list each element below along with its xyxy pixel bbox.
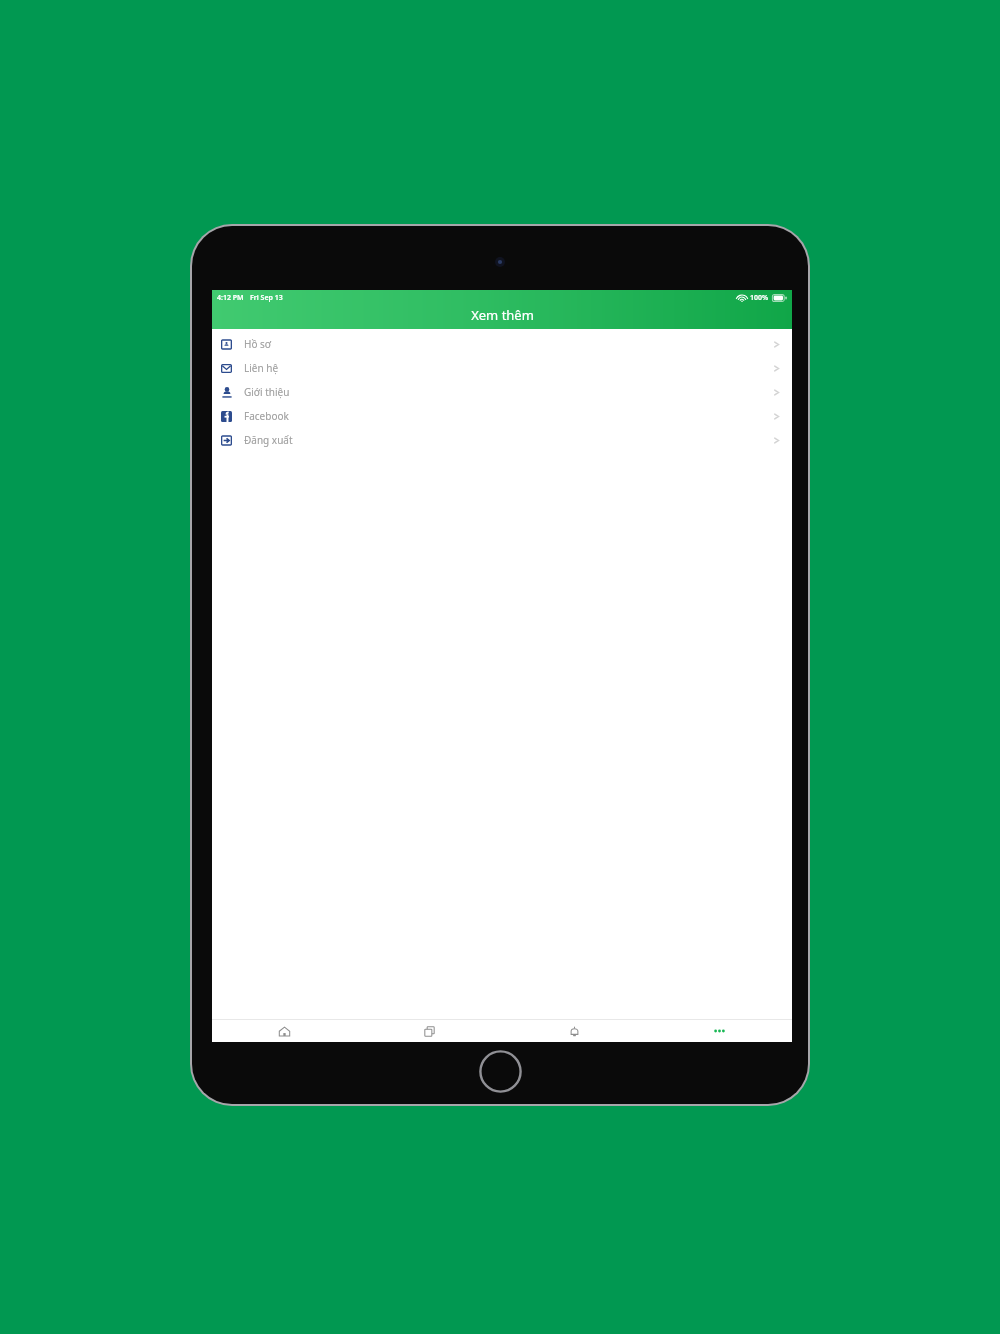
button[interactable]: Notifications [502,1020,647,1042]
button[interactable]: Hồ sơ [212,332,792,356]
staticText: 100% [750,293,769,303]
button[interactable]: Giới thiệu [212,380,792,404]
staticText: Facebook [244,409,289,423]
staticText: Xem thêm [471,306,534,324]
button[interactable]: Liên hệ [212,356,792,380]
staticText: Giới thiệu [244,385,290,399]
button[interactable]: Đăng xuất [212,428,792,452]
staticText: Liên hệ [244,361,279,375]
button[interactable]: Pages [357,1020,502,1042]
button[interactable]: Home [212,1020,357,1042]
staticText: 4:12 PM [217,293,244,303]
button[interactable]: Facebook [212,404,792,428]
staticText: Hồ sơ [244,337,272,351]
staticText: Đăng xuất [244,433,293,447]
button[interactable]: More [647,1020,792,1042]
staticText: Fri Sep 13 [250,293,283,303]
